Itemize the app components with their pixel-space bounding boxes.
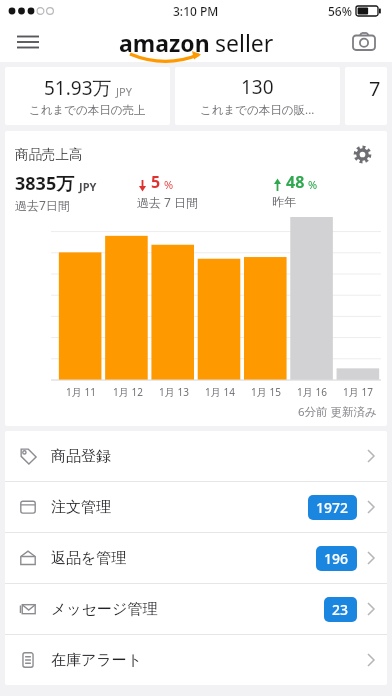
staticText: 商品登録 [51, 447, 111, 466]
staticText: 1月 12 [113, 385, 143, 399]
staticText: 23 [332, 600, 349, 619]
staticText: 在庫アラート [51, 651, 143, 670]
staticText: JPY [116, 84, 132, 99]
staticText: % [164, 177, 174, 192]
staticText: 1月 16 [297, 385, 327, 399]
staticText: これまでの本日の販... [200, 102, 315, 118]
staticText: 注文管理 [51, 498, 111, 517]
staticText: 1月 15 [251, 385, 281, 399]
staticText: 1月 13 [159, 385, 189, 399]
button[interactable]: 返品を管理 [5, 533, 387, 583]
staticText: 過去7日間 [15, 197, 70, 213]
staticText: 過去 7 日間 [137, 194, 199, 210]
staticText: 1月 17 [343, 385, 373, 399]
button[interactable]: 商品登録 [5, 431, 387, 481]
button[interactable]: 51.93万 [5, 67, 170, 125]
staticText: 3835万 [15, 171, 75, 196]
button[interactable]: Camera [342, 22, 386, 62]
staticText: 130 [241, 74, 274, 100]
staticText: 196 [324, 549, 349, 568]
staticText: % [308, 177, 318, 192]
staticText: amazon [119, 27, 210, 58]
staticText: 5 [151, 171, 161, 193]
staticText: seller [215, 27, 274, 58]
staticText: 1月 11 [66, 385, 96, 399]
button[interactable]: Menu [6, 22, 50, 62]
staticText: 1972 [316, 498, 349, 517]
staticText: これまでの本日の売上 [29, 103, 146, 117]
button[interactable]: 注文管理 [5, 482, 387, 532]
staticText: 返品を管理 [51, 549, 127, 568]
staticText: 3:10 PM [173, 3, 219, 19]
staticText: 商品売上高 [15, 146, 83, 163]
button[interactable]: メッセージ管理 [5, 584, 387, 634]
staticText: 7 [369, 75, 381, 102]
staticText: 51.93万 [44, 75, 112, 101]
staticText: メッセージ管理 [51, 600, 158, 619]
staticText: 6分前 更新済み [298, 404, 377, 420]
staticText: 昨年 [272, 194, 296, 209]
staticText: 7.00M [26, 211, 55, 212]
button[interactable]: 7 [345, 67, 387, 125]
staticText: 1月 14 [205, 385, 235, 399]
button[interactable]: 在庫アラート [5, 635, 387, 685]
staticText: JPY [79, 179, 97, 194]
staticText: 56% [328, 3, 352, 19]
staticText: 48 [286, 171, 305, 193]
button[interactable]: 130 [175, 67, 340, 125]
button[interactable]: Settings [347, 139, 377, 169]
